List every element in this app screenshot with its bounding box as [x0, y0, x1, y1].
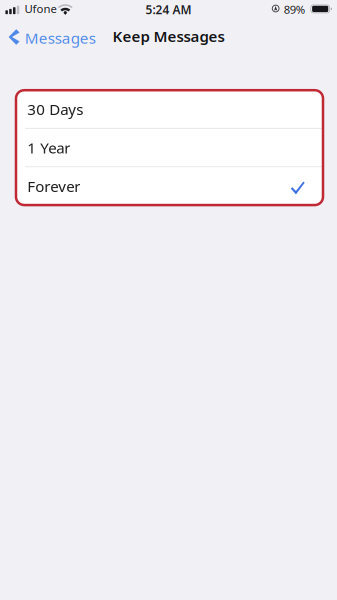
staticText: Keep Messages [112, 26, 224, 46]
staticText: 89% [284, 2, 305, 17]
staticText: 30 Days [27, 99, 83, 119]
staticText: 5:24 AM [145, 2, 191, 18]
staticText: Forever [27, 176, 80, 196]
staticText: Messages [25, 27, 96, 48]
staticText: 1 Year [27, 137, 70, 158]
button[interactable]: 30 Days [16, 90, 323, 128]
staticText: Ufone [25, 1, 57, 16]
button[interactable]: 1 Year [16, 129, 323, 167]
button[interactable]: Forever [16, 167, 323, 205]
button[interactable]: Messages [0, 25, 104, 49]
